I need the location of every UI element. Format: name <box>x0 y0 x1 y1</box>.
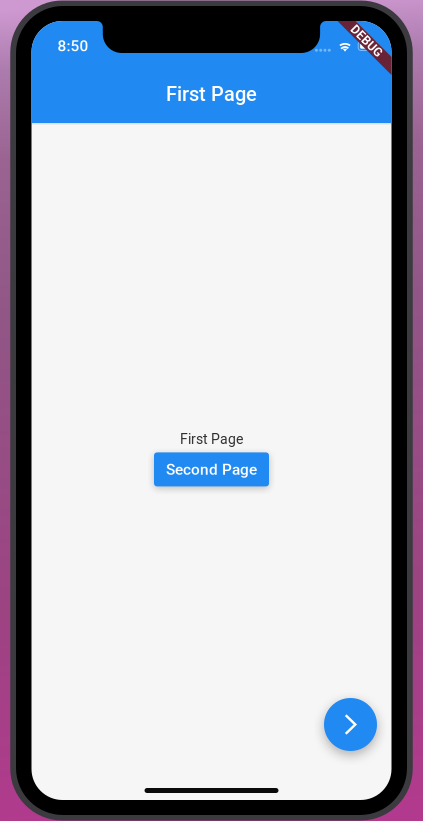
button[interactable]: Go to second page <box>324 698 377 751</box>
staticText: First Page <box>166 83 257 106</box>
staticText: 8:50 <box>57 37 88 55</box>
staticText: First Page <box>180 431 243 447</box>
button[interactable]: Second Page <box>154 452 269 486</box>
staticText: Second Page <box>166 460 257 478</box>
staticText: DEBUG <box>347 34 386 48</box>
